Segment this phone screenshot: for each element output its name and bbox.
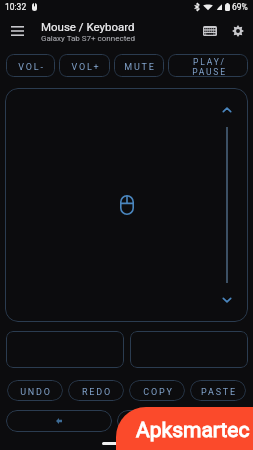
staticText: PASTE bbox=[201, 387, 237, 398]
staticText: VOL+ bbox=[71, 62, 101, 73]
button[interactable]: PASTE bbox=[190, 380, 246, 401]
button[interactable]: Settings bbox=[224, 17, 252, 45]
button[interactable]: Touchpad bbox=[5, 88, 248, 322]
button[interactable]: UNDO bbox=[7, 380, 63, 401]
button[interactable]: VOL+ bbox=[59, 54, 110, 77]
button[interactable]: COPY bbox=[129, 380, 185, 401]
staticText: REDO bbox=[82, 387, 112, 398]
button[interactable]: VOL- bbox=[6, 54, 55, 77]
button[interactable]: Enter bbox=[117, 410, 247, 432]
button[interactable]: Left click bbox=[6, 331, 124, 368]
staticText: VOL- bbox=[18, 62, 45, 73]
staticText: Apksmartec bbox=[136, 418, 250, 443]
button[interactable]: Right click bbox=[130, 331, 248, 368]
button[interactable]: Navigation menu bbox=[3, 17, 31, 45]
staticText: 10:32 bbox=[5, 2, 27, 12]
staticText: MUTE bbox=[124, 62, 156, 73]
button[interactable]: Backspace bbox=[6, 410, 112, 432]
staticText: 69% bbox=[232, 2, 248, 12]
staticText: Mouse / Keyboard bbox=[41, 20, 135, 33]
staticText: COPY bbox=[143, 387, 174, 398]
button[interactable]: PLAY/ bbox=[168, 54, 248, 77]
staticText: PLAY/ bbox=[193, 57, 226, 67]
button[interactable]: MUTE bbox=[114, 54, 164, 77]
staticText: PAUSE bbox=[192, 67, 227, 77]
staticText: UNDO bbox=[20, 387, 52, 398]
staticText: Galaxy Tab S7+ connected bbox=[41, 34, 135, 43]
button[interactable]: Keyboard bbox=[196, 17, 224, 45]
button[interactable]: REDO bbox=[68, 380, 124, 401]
